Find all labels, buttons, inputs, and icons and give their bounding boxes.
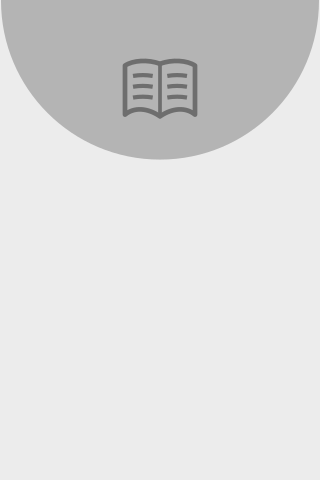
button[interactable]: Library bbox=[0, 0, 320, 480]
